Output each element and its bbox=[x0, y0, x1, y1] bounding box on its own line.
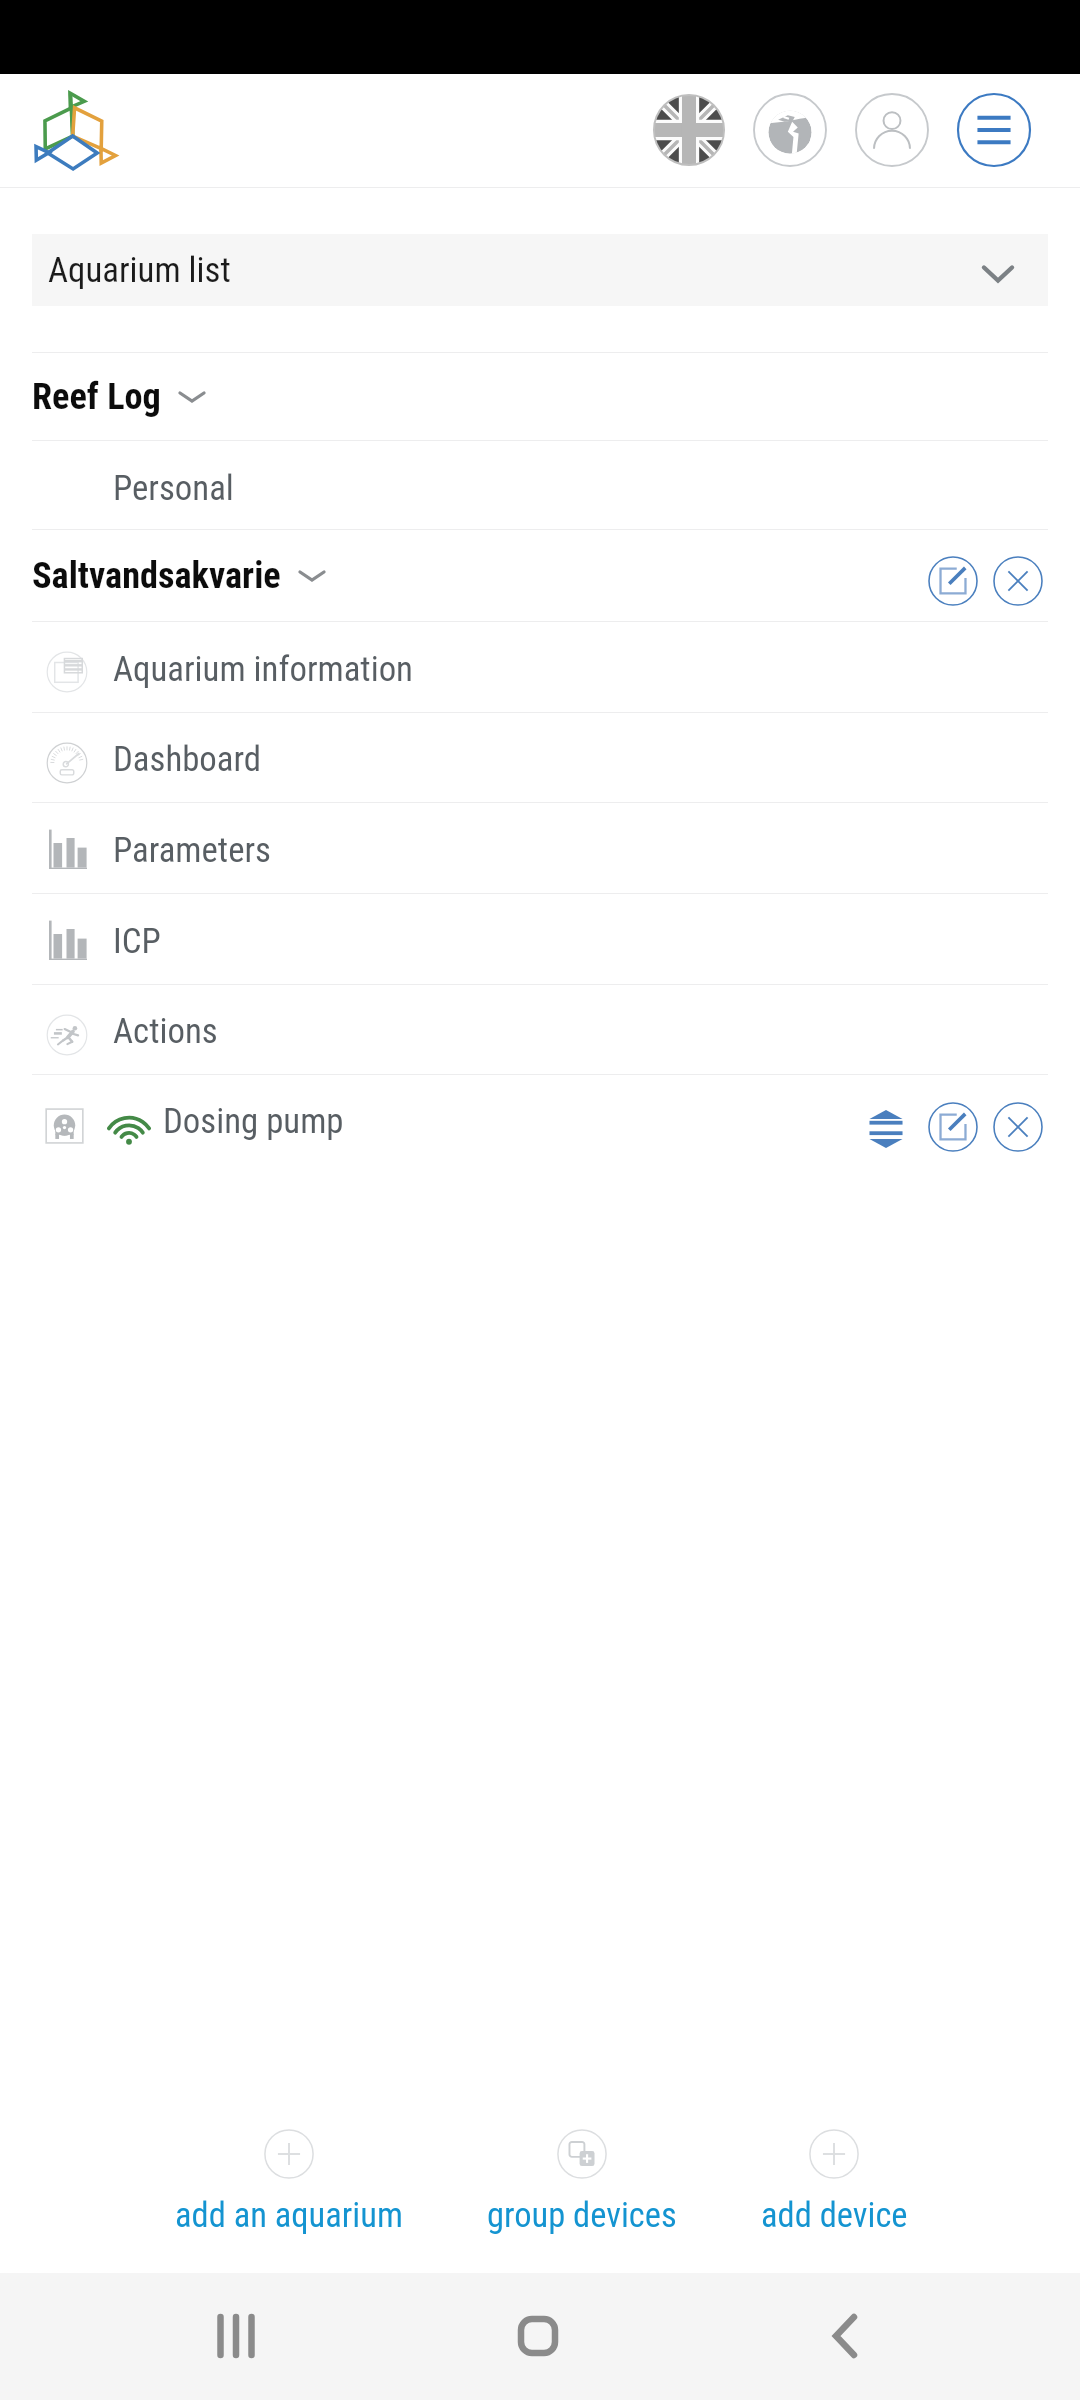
button[interactable]: Recents bbox=[186, 2286, 286, 2386]
button[interactable]: Reorder bbox=[858, 1101, 914, 1157]
staticText: Reef Log bbox=[32, 375, 161, 418]
button[interactable]: Dashboard bbox=[32, 713, 1048, 802]
staticText: Dashboard bbox=[113, 739, 262, 780]
button[interactable]: Account bbox=[851, 89, 933, 171]
staticText: add device bbox=[761, 2195, 908, 2235]
button[interactable]: Aquarium list bbox=[32, 234, 1048, 306]
button[interactable]: Remove bbox=[988, 1097, 1048, 1157]
button[interactable]: Remove bbox=[988, 551, 1048, 611]
button[interactable]: Edit bbox=[923, 1097, 983, 1157]
button[interactable]: add device bbox=[684, 2126, 984, 2235]
staticText: group devices bbox=[487, 2195, 677, 2235]
staticText: Aquarium list bbox=[48, 250, 231, 291]
button[interactable]: Home logo bbox=[25, 85, 130, 180]
staticText: Actions bbox=[113, 1011, 218, 1052]
button[interactable]: Region bbox=[749, 89, 831, 171]
button[interactable]: Saltvandsakvarie bbox=[32, 530, 1048, 621]
button[interactable]: ICP bbox=[32, 894, 1048, 984]
button[interactable]: Aquarium information bbox=[32, 622, 1048, 712]
staticText: Aquarium information bbox=[113, 649, 413, 690]
button[interactable]: group devices bbox=[432, 2126, 732, 2235]
button[interactable]: Language bbox=[648, 89, 730, 171]
button[interactable]: add an aquarium bbox=[139, 2126, 439, 2235]
staticText: ICP bbox=[113, 921, 161, 962]
button[interactable]: Reef Log bbox=[32, 353, 1048, 440]
button[interactable]: Personal bbox=[32, 441, 1048, 529]
staticText: Dosing pump bbox=[163, 1101, 344, 1142]
button[interactable]: Dosing pump bbox=[32, 1075, 1048, 1167]
button[interactable]: Actions bbox=[32, 985, 1048, 1074]
staticText: Saltvandsakvarie bbox=[32, 554, 281, 597]
button[interactable]: Parameters bbox=[32, 803, 1048, 893]
button[interactable]: Menu bbox=[953, 89, 1035, 171]
button[interactable]: Edit bbox=[923, 551, 983, 611]
staticText: add an aquarium bbox=[175, 2195, 403, 2235]
staticText: Personal bbox=[113, 468, 234, 509]
button[interactable]: Home bbox=[488, 2286, 588, 2386]
button[interactable]: Back bbox=[793, 2286, 893, 2386]
staticText: Parameters bbox=[113, 830, 271, 871]
